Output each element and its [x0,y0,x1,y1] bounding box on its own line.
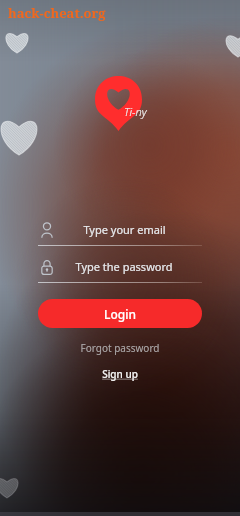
staticText: Forgot password [80,341,160,355]
staticText: Ti-ny [124,104,147,119]
staticText: Type the password [75,259,173,274]
button[interactable]: Login [38,299,202,328]
button[interactable]: Type your email [38,214,202,245]
staticText: Sign up [102,367,138,381]
button[interactable]: Sign up [38,364,202,384]
button[interactable]: Forgot password [38,338,202,358]
staticText: hack-cheat.org [8,4,106,22]
button[interactable]: Type the password [38,251,202,282]
staticText: Type your email [83,222,166,237]
staticText: Login [104,306,136,322]
